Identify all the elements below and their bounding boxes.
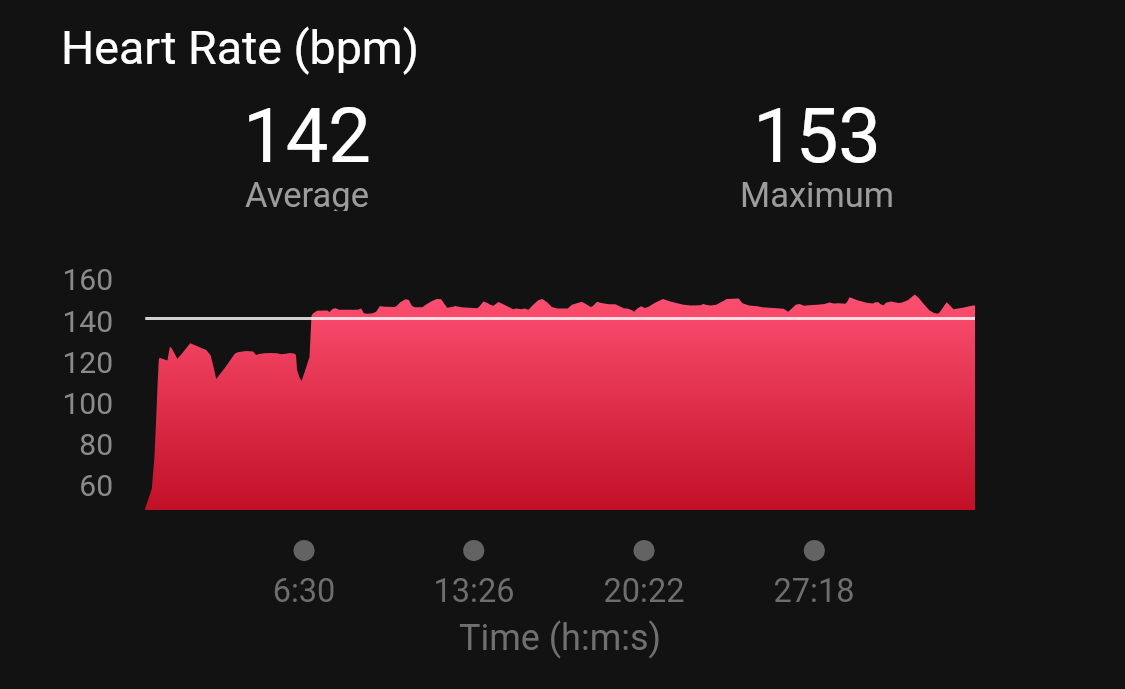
staticText: Time (h:m:s)	[360, 617, 760, 659]
staticText: 6:30	[224, 572, 384, 610]
staticText: 140	[42, 304, 113, 339]
button[interactable]: 142	[157, 91, 457, 216]
button[interactable]: 153	[667, 91, 967, 216]
staticText: Maximum	[667, 175, 967, 211]
staticText: Average	[157, 175, 457, 211]
staticText: 142	[157, 91, 457, 180]
button[interactable]: Heart rate over time chart	[40, 255, 1000, 530]
staticText: 60	[42, 468, 113, 503]
staticText: 27:18	[734, 572, 894, 610]
staticText: 120	[42, 345, 113, 380]
staticText: 153	[667, 91, 967, 180]
staticText: 160	[42, 262, 113, 297]
staticText: 100	[42, 386, 113, 421]
staticText: 80	[42, 427, 113, 462]
staticText: Heart Rate (bpm)	[61, 21, 419, 76]
staticText: 13:26	[394, 572, 554, 610]
staticText: 20:22	[564, 572, 724, 610]
